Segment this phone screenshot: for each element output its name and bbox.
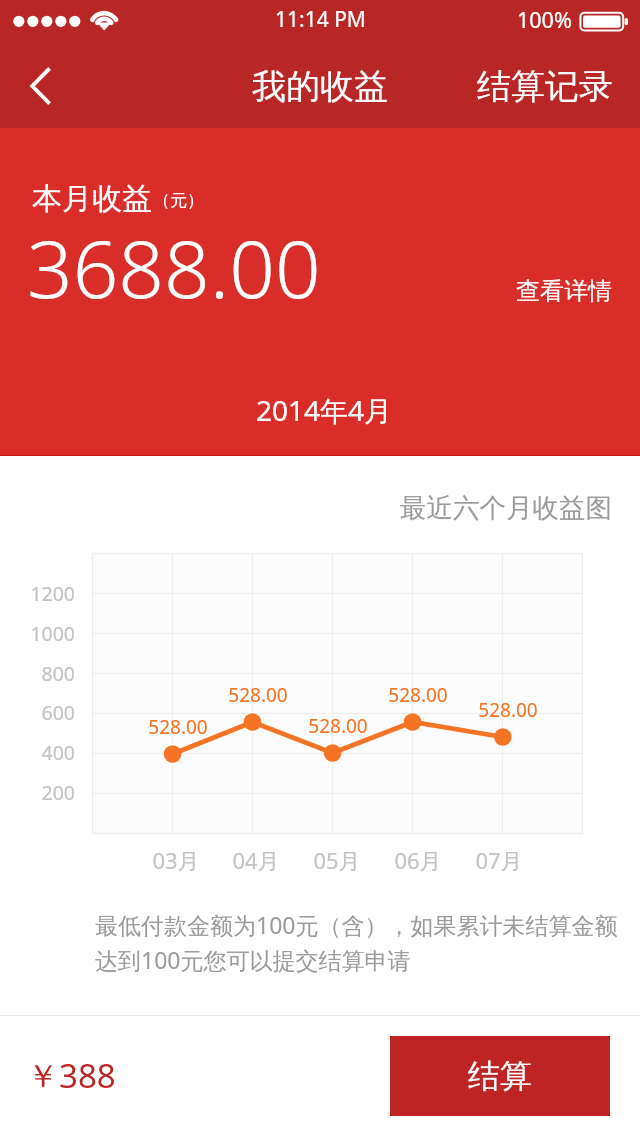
staticText: 528.00 xyxy=(208,682,308,708)
staticText: 最近六个月收益图 xyxy=(400,491,612,524)
staticText: 2014年4月 xyxy=(256,391,393,429)
staticText: 200 xyxy=(0,779,75,806)
staticText: （元） xyxy=(153,190,204,211)
staticText: 800 xyxy=(0,660,75,687)
staticText: 07月 xyxy=(459,845,539,875)
staticText: ￥ xyxy=(27,1056,59,1096)
staticText: 查看详情 xyxy=(516,276,612,306)
staticText: 11:14 PM xyxy=(275,5,366,34)
staticText: 04月 xyxy=(216,845,296,875)
staticText: 100% xyxy=(517,5,572,34)
button[interactable]: Back xyxy=(0,44,84,128)
button[interactable]: 结算 xyxy=(390,1036,610,1116)
staticText: 528.00 xyxy=(458,697,558,723)
staticText: 528.00 xyxy=(368,682,468,708)
staticText: 600 xyxy=(0,699,75,726)
button[interactable]: 结算记录 xyxy=(453,47,640,126)
staticText: 400 xyxy=(0,739,75,766)
button[interactable]: 查看详情 xyxy=(502,264,626,318)
staticText: 03月 xyxy=(136,845,216,875)
staticText: 3688.00 xyxy=(27,212,321,321)
staticText: 本月收益 xyxy=(32,180,152,218)
staticText: 结算 xyxy=(468,1056,532,1096)
staticText: 06月 xyxy=(378,845,458,875)
staticText: 结算记录 xyxy=(477,65,613,108)
staticText: 528.00 xyxy=(288,713,388,739)
staticText: 1000 xyxy=(0,620,75,647)
staticText: 528.00 xyxy=(128,714,228,740)
staticText: 388 xyxy=(59,1053,116,1098)
staticText: 05月 xyxy=(297,845,377,875)
staticText: 我的收益 xyxy=(252,65,388,108)
staticText: 最低付款金额为100元（含），如果累计未结算金额 达到100元您可以提交结算申请 xyxy=(95,909,618,976)
staticText: 1200 xyxy=(0,580,75,607)
